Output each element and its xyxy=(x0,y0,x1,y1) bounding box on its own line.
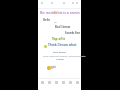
staticText: Re: notes xyxy=(40,10,56,15)
button[interactable]: Action xyxy=(74,79,80,85)
staticText: stay going xyxy=(53,50,66,53)
staticText: Think I know what xyxy=(48,43,77,47)
staticText: ok xyxy=(54,21,57,24)
staticText: Top of it xyxy=(52,37,65,41)
button[interactable]: Action xyxy=(46,79,52,85)
staticText: But I know xyxy=(55,25,71,29)
button[interactable]: Toolbar action xyxy=(75,1,79,5)
button[interactable]: Action xyxy=(53,79,59,85)
button[interactable]: Toolbar action xyxy=(40,1,44,5)
button[interactable]: Toolbar action xyxy=(62,1,66,5)
staticText: Sounds fine xyxy=(65,31,81,35)
staticText: Sent from my phone, excuse brevity xyxy=(43,54,86,57)
button[interactable]: Action xyxy=(60,79,66,85)
button[interactable]: Toolbar action xyxy=(50,1,54,5)
staticText: a word xyxy=(56,58,64,61)
button[interactable]: Toolbar action xyxy=(71,1,75,5)
staticText: Hello xyxy=(43,18,50,22)
button[interactable]: Action xyxy=(67,79,73,85)
button[interactable]: Action xyxy=(39,79,45,85)
staticText: got xyxy=(51,65,56,69)
staticText: this is a remin xyxy=(56,10,80,15)
